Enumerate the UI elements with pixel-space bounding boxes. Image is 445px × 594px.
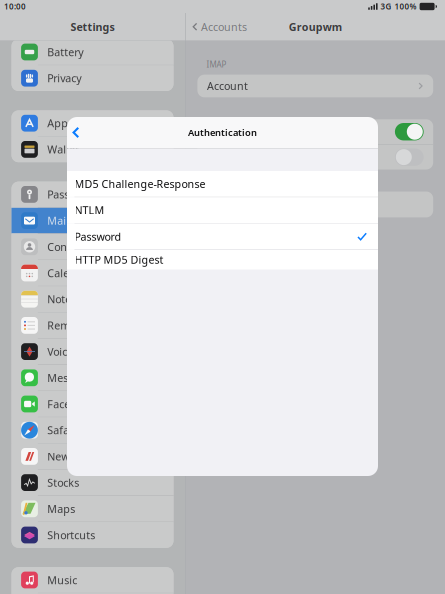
button[interactable]: Reminders [11, 313, 173, 338]
staticText: Notes [47, 292, 76, 306]
button[interactable]: MD5 Challenge-Response [67, 171, 378, 197]
button[interactable]: Notes [11, 286, 173, 312]
button[interactable]: Battery [11, 39, 173, 65]
button[interactable]: Calendar [11, 260, 173, 286]
staticText: 10:00 [4, 1, 26, 12]
staticText: 3G [381, 1, 392, 12]
button[interactable]: Shortcuts [11, 522, 173, 548]
button[interactable]: News [11, 444, 173, 469]
button[interactable]: Back [67, 121, 80, 144]
staticText: Battery [47, 45, 83, 59]
staticText: NTLM [74, 203, 104, 217]
button[interactable]: Passwords [11, 182, 173, 207]
staticText: HTTP MD5 Digest [74, 253, 163, 267]
button[interactable]: Accounts [186, 15, 247, 39]
staticText: Shortcuts [47, 528, 95, 542]
button[interactable]: Mail [11, 208, 173, 233]
staticText: Messages [47, 371, 97, 385]
staticText: Password [74, 229, 121, 244]
staticText: Safari [47, 423, 76, 437]
staticText: News [47, 449, 74, 463]
button[interactable]: Messages [11, 365, 173, 391]
button[interactable]: App Store [11, 110, 173, 136]
staticText: Groupwm [289, 20, 342, 34]
button[interactable]: Safari [11, 417, 173, 443]
staticText: Calendar [47, 266, 93, 280]
staticText: Privacy [47, 71, 81, 85]
button[interactable]: HTTP MD5 Digest [67, 250, 378, 269]
staticText: Stocks [47, 475, 79, 490]
staticText: Account [207, 79, 248, 93]
button[interactable]: Music [11, 567, 173, 593]
staticText: Voice Memos [47, 344, 113, 359]
staticText: Music [47, 573, 77, 587]
button[interactable]: Account [197, 75, 433, 97]
button[interactable]: Privacy [11, 65, 173, 91]
button[interactable]: Disabled toggle [197, 145, 433, 169]
staticText: Reminders [47, 318, 102, 332]
button[interactable]: Maps [11, 496, 173, 522]
staticText: Maps [47, 502, 75, 516]
staticText: Accounts [201, 20, 247, 34]
button[interactable]: NTLM [67, 197, 378, 223]
staticText: IMAP [207, 59, 227, 70]
staticText: 100% [395, 1, 417, 12]
staticText: Passwords [47, 187, 99, 201]
staticText: Mail [47, 213, 69, 228]
staticText: Settings [70, 20, 114, 34]
staticText: MD5 Challenge-Response [74, 177, 205, 191]
staticText: App Store [47, 116, 97, 130]
button[interactable]: Wallet [11, 137, 173, 162]
button[interactable]: Enabled toggle [197, 119, 433, 144]
staticText: FaceTime [47, 397, 95, 411]
button[interactable]: Stocks [11, 470, 173, 495]
button[interactable]: Contacts [11, 234, 173, 260]
button[interactable]: Voice Memos [11, 339, 173, 364]
staticText: Contacts [47, 240, 91, 254]
button[interactable]: FaceTime [11, 391, 173, 417]
button[interactable]: Password [67, 224, 378, 249]
staticText: Wallet [47, 142, 79, 156]
staticText: Authentication [188, 126, 257, 139]
